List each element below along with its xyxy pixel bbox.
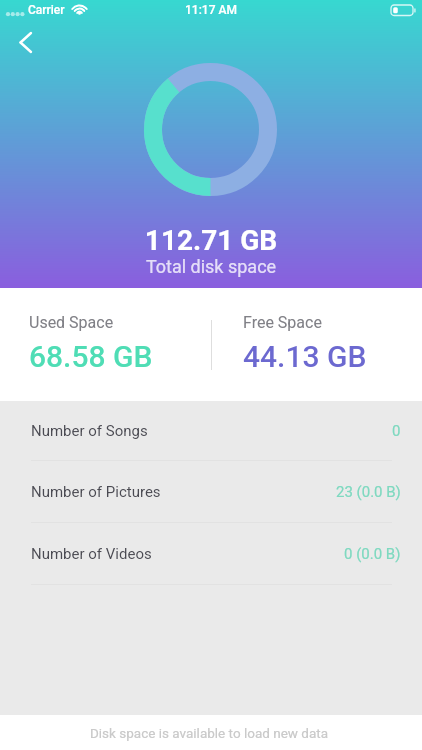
staticText: Number of Pictures	[31, 483, 161, 501]
staticText: Number of Videos	[31, 545, 152, 563]
staticText: Free Space	[243, 313, 322, 332]
staticText: 11:17 AM	[185, 3, 237, 17]
staticText: 0 (0.0 B)	[344, 545, 401, 563]
button[interactable]: Back	[6, 26, 42, 62]
staticText: 0	[392, 422, 401, 440]
staticText: 68.58 GB	[29, 339, 153, 374]
button[interactable]: Used Space	[29, 313, 153, 374]
staticText: Number of Songs	[31, 422, 148, 440]
staticText: Total disk space	[0, 256, 422, 277]
staticText: Disk space is available to load new data	[0, 725, 420, 741]
staticText: Used Space	[29, 313, 114, 332]
staticText: Carrier	[28, 3, 65, 17]
staticText: 112.71 GB	[0, 224, 422, 257]
button[interactable]: Number of Pictures	[0, 461, 422, 523]
button[interactable]: Number of Videos	[0, 523, 422, 585]
staticText: 44.13 GB	[243, 339, 367, 374]
button[interactable]: Number of Songs	[0, 401, 422, 461]
button[interactable]: Free Space	[243, 313, 367, 374]
staticText: 23 (0.0 B)	[336, 483, 401, 501]
